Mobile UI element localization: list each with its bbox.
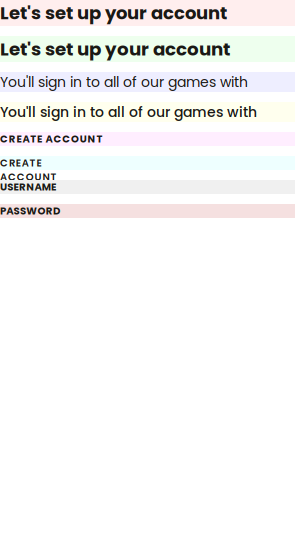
staticText: You'll sign in to all of our games with [0,102,257,122]
staticText: Let's set up your account [0,0,227,26]
staticText: You'll sign in to all of our games with [0,72,248,92]
staticText: Let's set up your account [0,36,230,62]
staticText: CREATE ACCOUNT [0,132,102,146]
staticText: USERNAME [0,180,56,194]
staticText: CREATE ACCOUNT [0,156,102,170]
staticText: PASSWORD [0,204,60,218]
